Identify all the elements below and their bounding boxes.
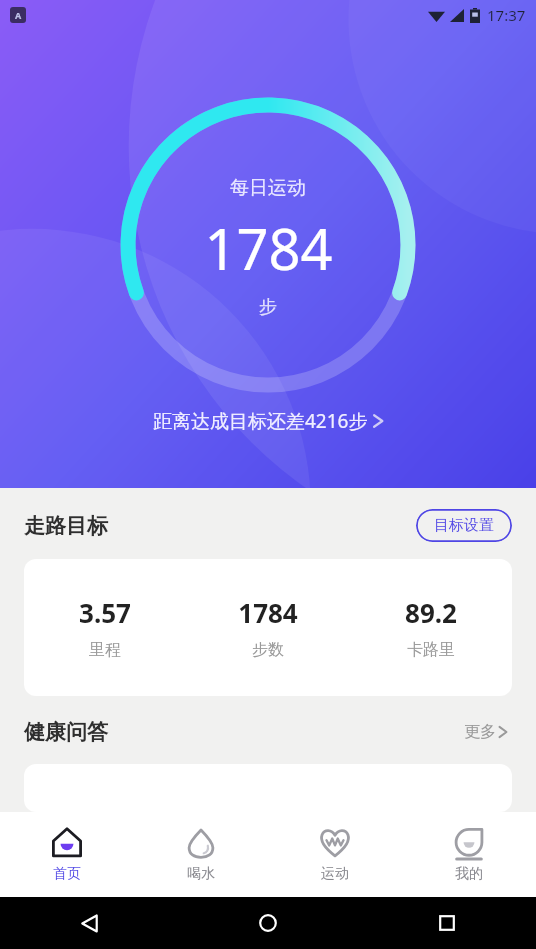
- staticText: A: [15, 9, 22, 21]
- button[interactable]: 我的: [402, 812, 536, 897]
- button[interactable]: Back: [69, 903, 109, 943]
- staticText: 目标设置: [434, 516, 494, 535]
- staticText: 步数: [252, 640, 284, 660]
- staticText: 1784: [204, 210, 333, 286]
- staticText: 首页: [53, 865, 81, 883]
- staticText: 我的: [455, 865, 483, 883]
- staticText: 喝水: [187, 865, 215, 883]
- button[interactable]: 运动: [268, 812, 402, 897]
- button[interactable]: 首页: [0, 812, 134, 897]
- button[interactable]: 3.57: [24, 559, 512, 696]
- staticText: 17:37: [487, 5, 526, 25]
- staticText: 健康问答: [24, 719, 108, 745]
- button[interactable]: 更多: [460, 718, 512, 746]
- staticText: 每日运动: [230, 176, 306, 200]
- staticText: 里程: [89, 640, 121, 660]
- button[interactable]: 目标设置: [416, 509, 512, 542]
- staticText: 1784: [238, 595, 298, 630]
- button[interactable]: Recent apps: [427, 903, 467, 943]
- staticText: 走路目标: [24, 513, 108, 539]
- staticText: 卡路里: [407, 640, 455, 660]
- staticText: 运动: [321, 865, 349, 883]
- staticText: 更多: [464, 722, 496, 742]
- staticText: 步: [259, 296, 277, 319]
- button[interactable]: 喝水: [134, 812, 268, 897]
- staticText: 3.57: [79, 595, 131, 630]
- staticText: 89.2: [405, 595, 457, 630]
- button[interactable]: Home: [248, 903, 288, 943]
- button[interactable]: 距离达成目标还差4216步: [145, 404, 392, 438]
- staticText: 距离达成目标还差4216步: [153, 408, 368, 434]
